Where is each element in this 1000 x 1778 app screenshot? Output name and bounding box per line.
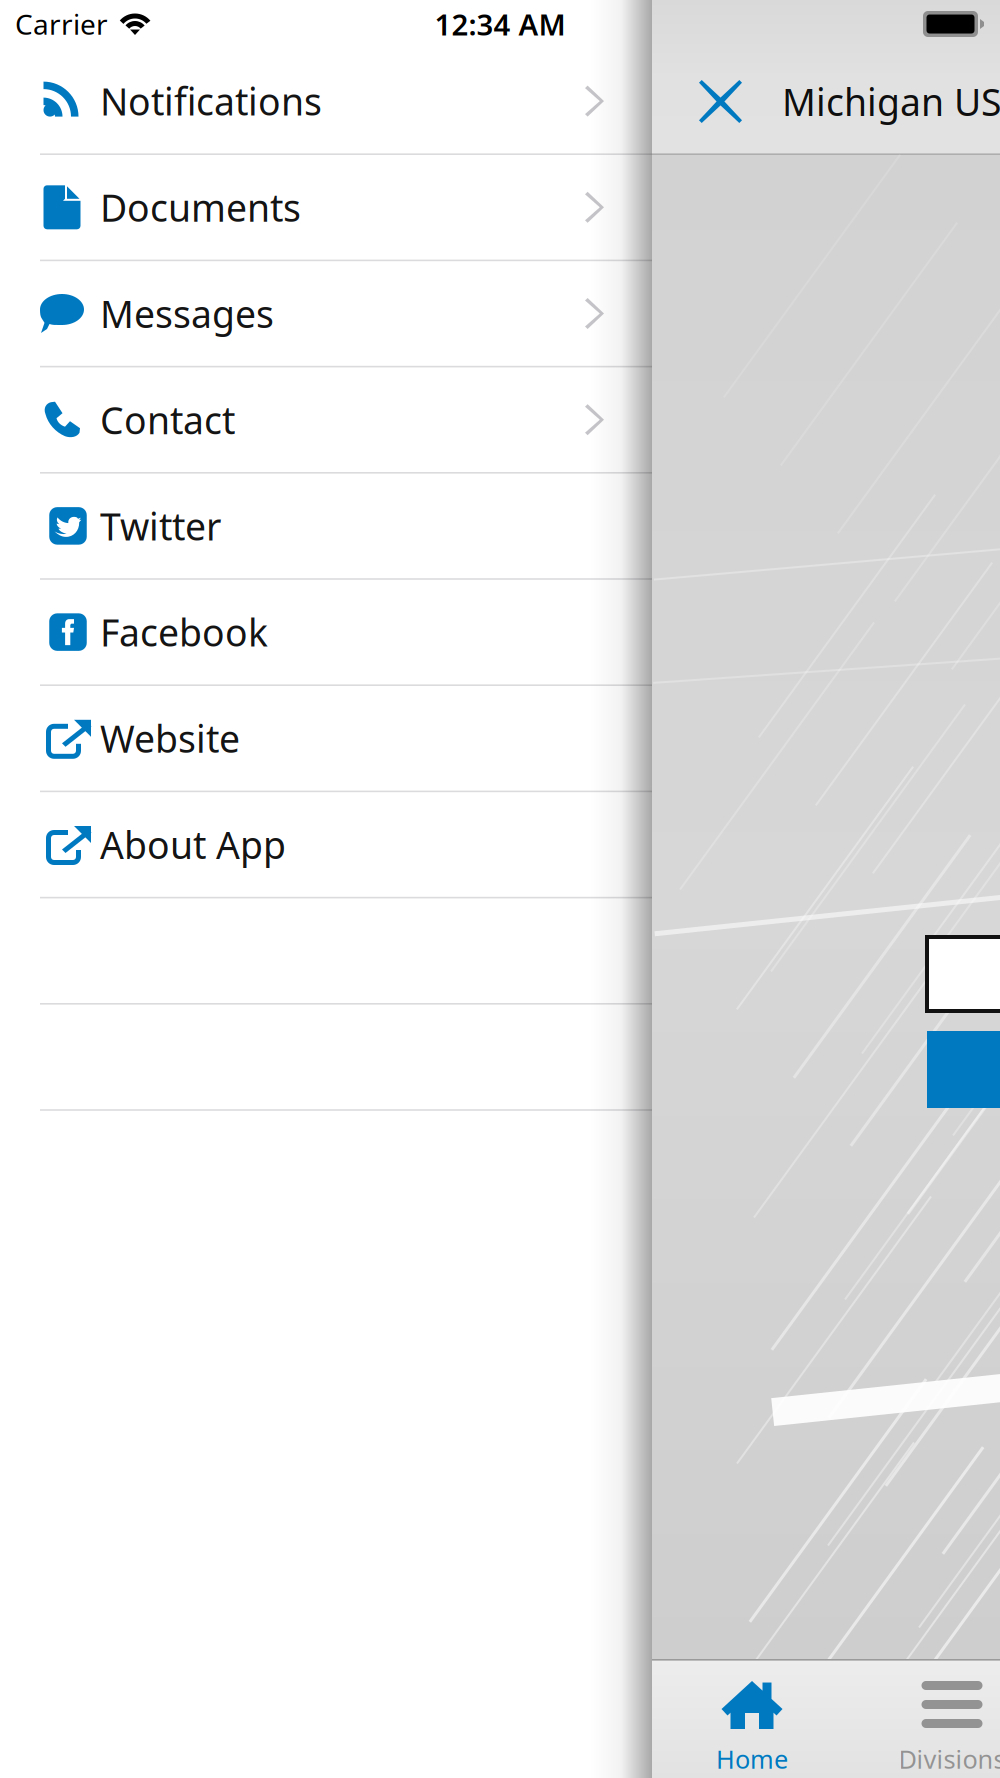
staticText: Documents [100,182,301,232]
button[interactable]: Contact [0,367,652,473]
staticText: Twitter [100,501,221,551]
staticText: Messages [100,289,274,338]
staticText: Carrier [15,5,108,43]
button[interactable]: Website [0,685,652,791]
button[interactable]: Documents [0,154,652,260]
staticText: Notifications [100,76,322,126]
button[interactable]: Home [652,1659,852,1778]
button[interactable]: About App [0,791,652,898]
button[interactable]: Notifications [0,48,652,154]
staticText: Home [716,1742,788,1776]
staticText: Facebook [100,607,268,657]
staticText: Contact [100,395,235,444]
button[interactable]: Messages [0,260,652,367]
button[interactable]: Divisions [852,1659,1000,1778]
staticText: Michigan USA [782,77,1000,126]
staticText: Divisions [898,1742,1000,1776]
button[interactable]: Facebook [0,579,652,685]
staticText: Website [100,713,240,763]
staticText: 12:34 AM [434,4,565,43]
button[interactable]: Close menu [652,48,782,155]
button[interactable]: Twitter [0,473,652,579]
staticText: About App [100,820,286,869]
